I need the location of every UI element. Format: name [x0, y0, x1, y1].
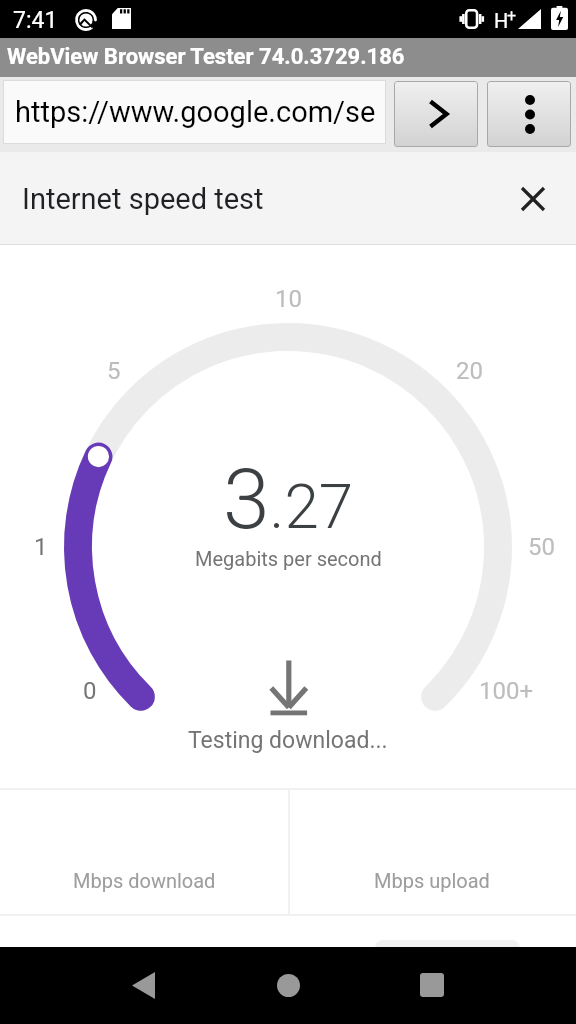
staticText: Megabits per second — [195, 547, 382, 570]
staticText: 7:41 — [13, 7, 58, 34]
staticText: 10 — [275, 285, 302, 313]
staticText: 1 — [34, 533, 48, 561]
staticText: 0 — [83, 677, 97, 705]
button[interactable]: Close — [505, 171, 561, 227]
button[interactable]: Recent apps — [396, 949, 468, 1021]
staticText: H — [494, 9, 509, 32]
button[interactable]: Home — [252, 949, 324, 1021]
staticText: + — [507, 6, 517, 25]
staticText: 3.27 — [223, 450, 354, 548]
button[interactable]: Mbps download — [0, 790, 288, 915]
staticText: 100+ — [479, 677, 534, 705]
button[interactable]: Back — [107, 949, 179, 1021]
staticText: 20 — [456, 357, 483, 385]
button[interactable]: https://www.google.com/se — [3, 80, 386, 144]
staticText: 5 — [107, 357, 121, 385]
staticText: Mbps download — [73, 869, 216, 892]
staticText: Mbps upload — [374, 869, 490, 892]
button[interactable]: Go — [394, 81, 478, 147]
staticText: 50 — [528, 533, 555, 561]
other: Download — [268, 658, 310, 718]
button[interactable]: Run speed test again — [375, 940, 520, 960]
button[interactable]: Mbps upload — [288, 790, 576, 915]
staticText: Internet speed test — [22, 182, 264, 216]
staticText: Testing download... — [188, 727, 388, 754]
staticText: WebView Browser Tester 74.0.3729.186 — [7, 44, 405, 70]
button[interactable]: More options — [487, 81, 571, 147]
staticText: https://www.google.com/se — [15, 95, 376, 129]
